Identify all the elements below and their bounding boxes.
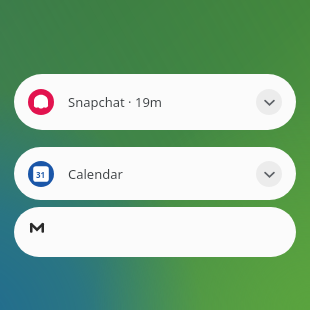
button[interactable]: Gmail — [14, 207, 296, 257]
button[interactable]: Expand notification — [256, 161, 282, 187]
other: Calendar — [28, 161, 54, 187]
other: Snapchat — [28, 89, 54, 115]
button[interactable]: Snapchat — [14, 74, 296, 130]
staticText: Calendar — [68, 165, 256, 183]
button[interactable]: Expand notification — [256, 89, 282, 115]
staticText: Snapchat · 19m — [68, 93, 256, 111]
button[interactable]: Calendar — [14, 147, 296, 200]
other: Gmail — [30, 221, 44, 235]
staticText: 31 — [36, 169, 46, 180]
